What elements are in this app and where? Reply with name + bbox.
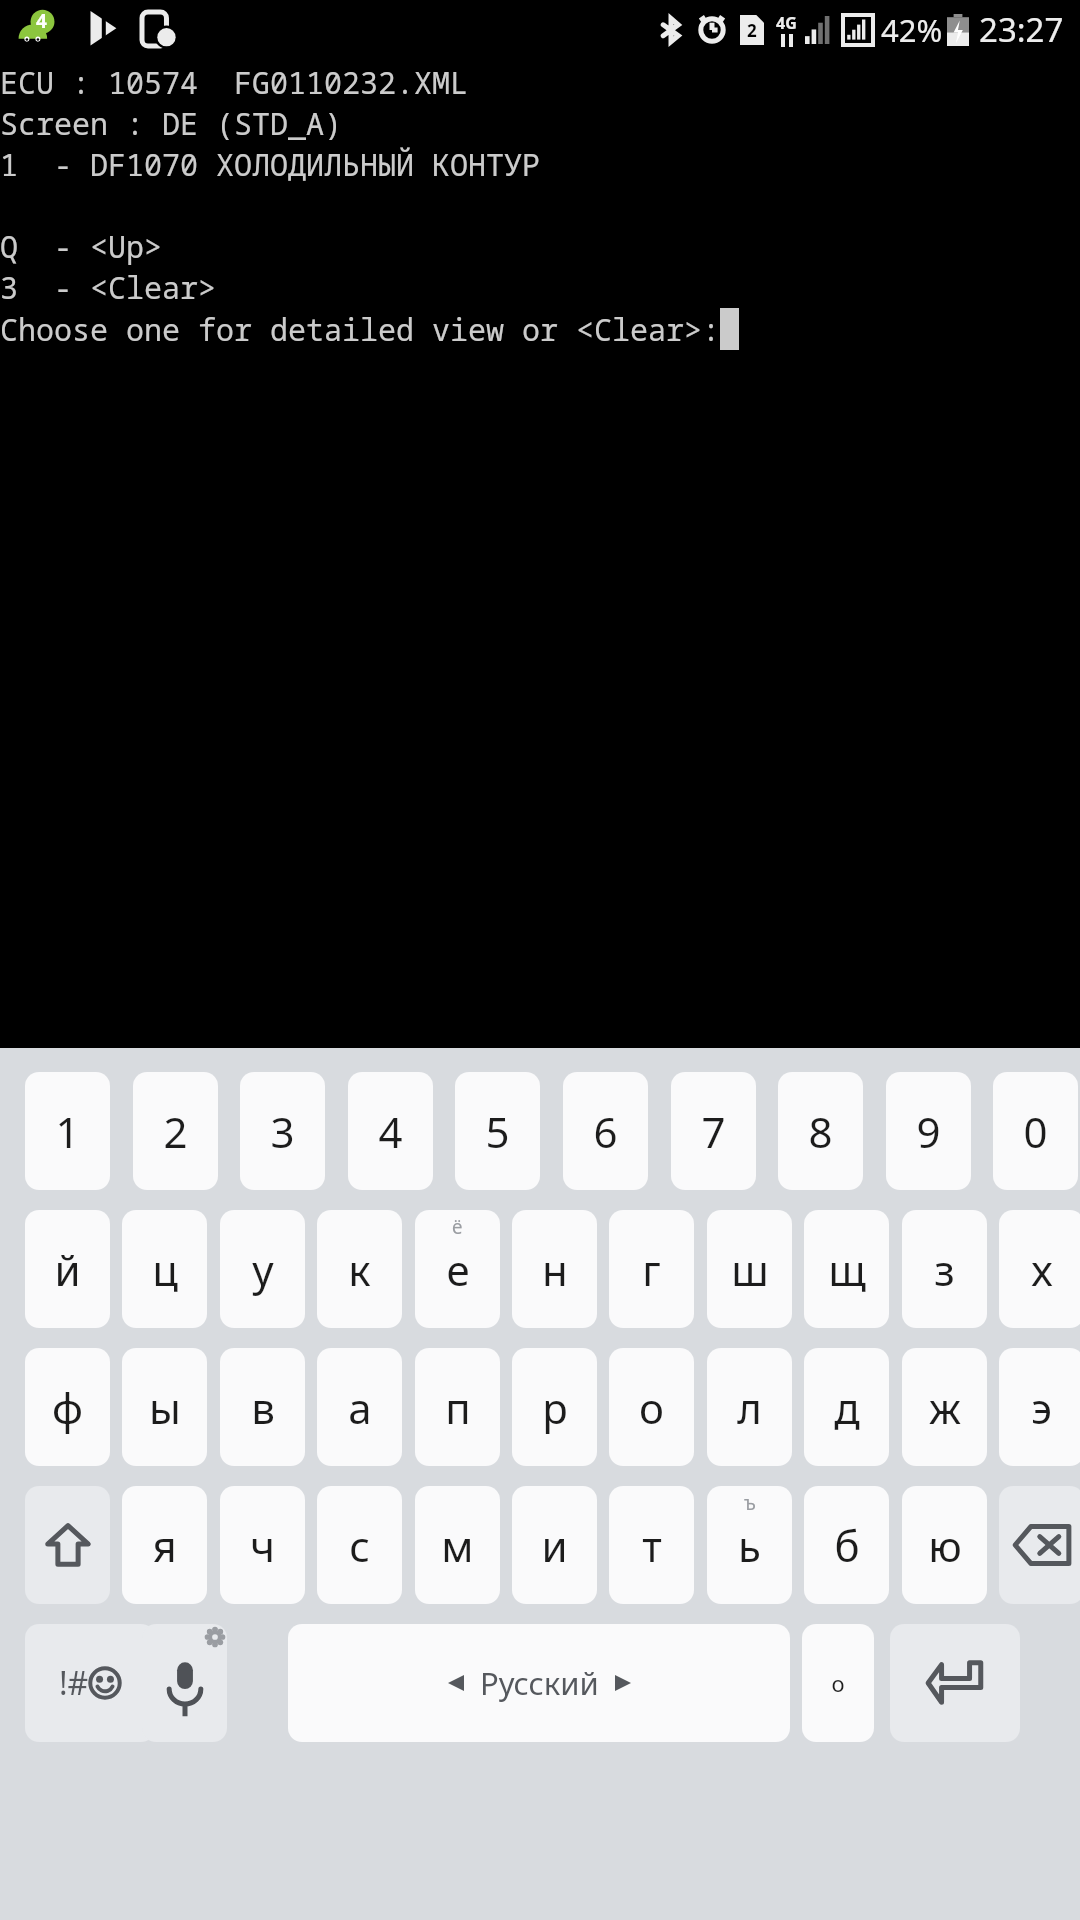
button[interactable]: а — [317, 1348, 402, 1466]
staticText: 4G — [776, 12, 797, 34]
staticText: 4 — [36, 8, 47, 34]
button[interactable]: 8 — [778, 1072, 863, 1190]
button[interactable]: у — [220, 1210, 305, 1328]
staticText: с — [349, 1517, 370, 1574]
button[interactable]: Voice input — [142, 1624, 227, 1742]
staticText: !# — [59, 1661, 89, 1705]
button[interactable]: ж — [902, 1348, 987, 1466]
staticText: ц — [152, 1241, 178, 1298]
staticText: у — [252, 1241, 274, 1298]
button[interactable]: я — [122, 1486, 207, 1604]
staticText: ч — [250, 1517, 275, 1574]
button[interactable]: Русский — [288, 1624, 790, 1742]
staticText: т — [642, 1517, 662, 1574]
button[interactable]: 0 — [993, 1072, 1078, 1190]
button[interactable]: о — [802, 1624, 874, 1742]
button[interactable]: ы — [122, 1348, 207, 1466]
staticText: ы — [149, 1379, 181, 1436]
button[interactable]: с — [317, 1486, 402, 1604]
staticText: ъ — [744, 1490, 756, 1516]
button[interactable]: и — [512, 1486, 597, 1604]
staticText: ECU : 10574 FG0110232.XML — [0, 62, 468, 103]
button[interactable]: 5 — [455, 1072, 540, 1190]
button[interactable]: э — [999, 1348, 1080, 1466]
staticText: й — [54, 1241, 81, 1298]
button[interactable]: 6 — [563, 1072, 648, 1190]
button[interactable]: т — [609, 1486, 694, 1604]
button[interactable]: Enter — [890, 1624, 1020, 1742]
staticText: 42% — [881, 9, 943, 51]
staticText: 2 — [747, 19, 757, 42]
button[interactable]: ц — [122, 1210, 207, 1328]
staticText: 7 — [701, 1103, 726, 1160]
button[interactable]: 9 — [886, 1072, 971, 1190]
staticText: э — [1031, 1379, 1052, 1436]
staticText: х — [1031, 1241, 1053, 1298]
button[interactable]: 2 — [133, 1072, 218, 1190]
staticText: п — [445, 1379, 471, 1436]
staticText: ж — [929, 1379, 961, 1436]
button[interactable]: ч — [220, 1486, 305, 1604]
button[interactable]: д — [804, 1348, 889, 1466]
staticText: щ — [828, 1241, 866, 1298]
button[interactable]: Backspace — [999, 1486, 1080, 1604]
staticText: 3 - <Clear> — [0, 267, 216, 308]
staticText: ф — [52, 1379, 83, 1436]
button[interactable]: в — [220, 1348, 305, 1466]
button[interactable]: е — [415, 1210, 500, 1328]
staticText: и — [541, 1517, 568, 1574]
button[interactable]: Symbols and emoji — [25, 1624, 155, 1742]
staticText: о — [639, 1379, 664, 1436]
staticText: б — [834, 1517, 860, 1574]
button[interactable]: ю — [902, 1486, 987, 1604]
staticText: р — [542, 1379, 568, 1436]
button[interactable]: л — [707, 1348, 792, 1466]
staticText: г — [642, 1241, 661, 1298]
staticText: о — [831, 1668, 845, 1698]
staticText: 1 — [55, 1103, 80, 1160]
staticText: ь — [738, 1517, 761, 1574]
staticText: Q - <Up> — [0, 226, 162, 267]
button[interactable]: ф — [25, 1348, 110, 1466]
button[interactable]: б — [804, 1486, 889, 1604]
staticText: 0 — [1023, 1103, 1048, 1160]
staticText: н — [542, 1241, 568, 1298]
staticText: я — [152, 1517, 177, 1574]
button[interactable]: 3 — [240, 1072, 325, 1190]
button[interactable]: 7 — [671, 1072, 756, 1190]
button[interactable]: щ — [804, 1210, 889, 1328]
staticText: 8 — [808, 1103, 833, 1160]
staticText: з — [934, 1241, 955, 1298]
staticText: ш — [731, 1241, 769, 1298]
button[interactable]: ь — [707, 1486, 792, 1604]
button[interactable]: о — [609, 1348, 694, 1466]
button[interactable]: р — [512, 1348, 597, 1466]
staticText: Русский — [480, 1662, 599, 1704]
button[interactable]: г — [609, 1210, 694, 1328]
button[interactable]: 4 — [348, 1072, 433, 1190]
staticText: Screen : DE (STD_A) — [0, 103, 342, 144]
staticText: 4 — [378, 1103, 403, 1160]
button[interactable]: й — [25, 1210, 110, 1328]
staticText: к — [348, 1241, 371, 1298]
staticText: 3 — [270, 1103, 295, 1160]
staticText: 2 — [163, 1103, 188, 1160]
staticText: Choose one for detailed view or <Clear>: — [0, 309, 720, 350]
staticText: ю — [928, 1517, 962, 1574]
button[interactable]: ш — [707, 1210, 792, 1328]
button[interactable]: к — [317, 1210, 402, 1328]
button[interactable]: п — [415, 1348, 500, 1466]
button[interactable]: з — [902, 1210, 987, 1328]
staticText: ё — [452, 1214, 463, 1240]
button[interactable]: 1 — [25, 1072, 110, 1190]
staticText: в — [251, 1379, 275, 1436]
button[interactable]: м — [415, 1486, 500, 1604]
button[interactable]: Shift — [25, 1486, 110, 1604]
staticText: 9 — [916, 1103, 941, 1160]
button[interactable]: х — [999, 1210, 1080, 1328]
staticText: 1 - DF1070 ХОЛОДИЛЬНЫЙ КОНТУР — [0, 144, 540, 185]
staticText: 5 — [485, 1103, 510, 1160]
staticText: м — [441, 1517, 474, 1574]
button[interactable]: н — [512, 1210, 597, 1328]
